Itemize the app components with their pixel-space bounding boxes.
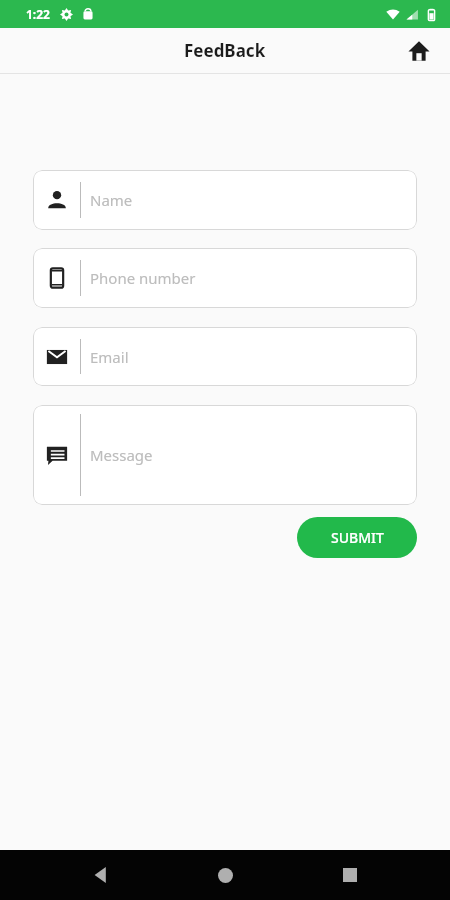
button[interactable]: Home: [398, 30, 440, 72]
staticText: Message: [90, 445, 153, 465]
button[interactable]: Phone number: [33, 248, 417, 308]
staticText: Phone number: [90, 268, 196, 288]
staticText: FeedBack: [184, 39, 266, 62]
staticText: SUBMIT: [331, 528, 384, 547]
staticText: Email: [90, 347, 129, 367]
button[interactable]: Message: [33, 405, 417, 505]
button[interactable]: Home: [201, 851, 249, 899]
button[interactable]: Name: [33, 170, 417, 230]
button[interactable]: Email: [33, 327, 417, 386]
button[interactable]: Recent apps: [326, 851, 374, 899]
staticText: Name: [90, 190, 133, 210]
button[interactable]: SUBMIT: [297, 517, 417, 558]
button[interactable]: Back: [77, 851, 125, 899]
staticText: 1:22: [26, 6, 50, 22]
